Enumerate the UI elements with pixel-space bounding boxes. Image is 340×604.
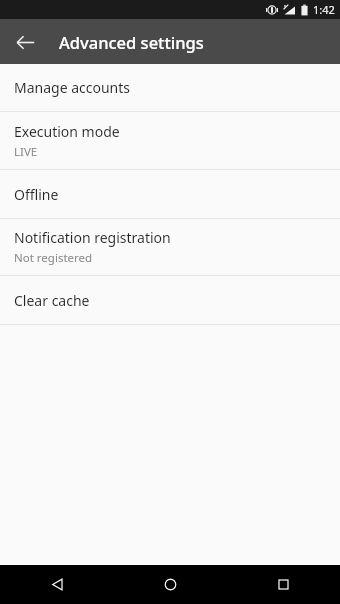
button[interactable]: Recents — [227, 565, 340, 604]
button[interactable]: Home — [114, 565, 227, 604]
button[interactable]: Clear cache — [0, 276, 340, 324]
button[interactable]: Execution mode — [0, 112, 340, 169]
button[interactable]: Back — [7, 24, 43, 60]
button[interactable]: Offline — [0, 170, 340, 218]
staticText: Execution mode — [14, 122, 120, 141]
button[interactable]: Manage accounts — [0, 64, 340, 111]
button[interactable]: Notification registration — [0, 219, 340, 275]
staticText: Clear cache — [14, 291, 90, 310]
staticText: LIVE — [14, 144, 38, 160]
staticText: Advanced settings — [59, 31, 204, 53]
staticText: Manage accounts — [14, 78, 131, 97]
staticText: Offline — [14, 185, 59, 204]
button[interactable]: Back — [0, 565, 114, 604]
staticText: 1:42 — [313, 2, 335, 17]
staticText: Notification registration — [14, 228, 171, 247]
staticText: Not registered — [14, 250, 93, 266]
